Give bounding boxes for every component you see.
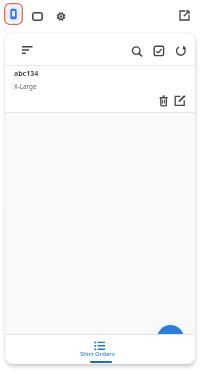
button[interactable] xyxy=(153,45,165,57)
button[interactable]: abc134 xyxy=(14,69,39,79)
button[interactable] xyxy=(20,44,34,56)
button[interactable] xyxy=(157,325,184,352)
button[interactable] xyxy=(130,44,144,58)
button[interactable] xyxy=(4,3,23,25)
button[interactable] xyxy=(179,10,190,21)
button[interactable] xyxy=(32,12,43,21)
staticText: X-Large xyxy=(14,82,37,91)
staticText: Shirt Orders xyxy=(80,350,115,358)
button[interactable] xyxy=(174,95,186,107)
button[interactable] xyxy=(175,45,187,57)
button[interactable] xyxy=(158,95,169,107)
button[interactable] xyxy=(55,10,67,22)
button[interactable]: Shirt Orders xyxy=(79,337,121,364)
